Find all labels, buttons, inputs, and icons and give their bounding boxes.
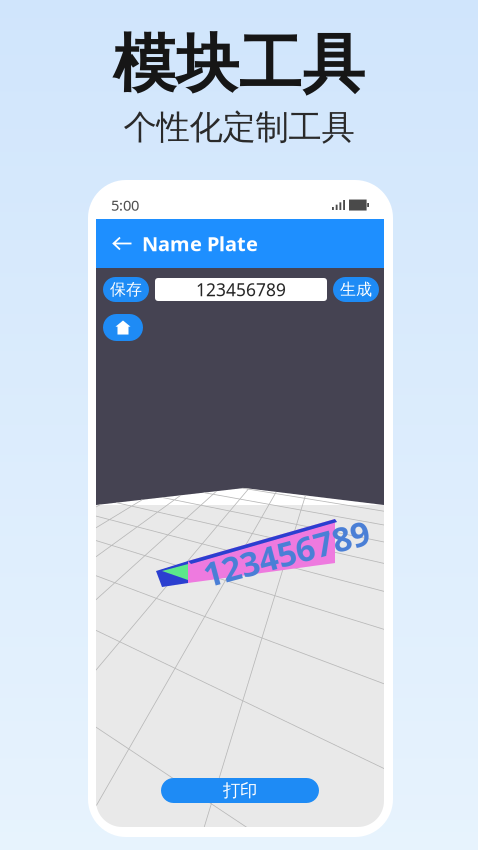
button[interactable]: Home [103,314,143,341]
button[interactable]: 打印 [161,778,319,803]
button[interactable]: Back [102,219,142,268]
staticText: 模块工具 [113,26,365,103]
staticText: 生成 [340,280,372,299]
staticText: Name Plate [142,230,258,257]
staticText: 5:00 [111,195,139,215]
staticText: 123456789 [201,531,372,575]
staticText: 123456789 [196,278,286,301]
staticText: 个性化定制工具 [123,107,354,148]
button[interactable]: 保存 [103,277,149,302]
staticText: 打印 [223,780,257,801]
button[interactable]: 生成 [333,277,379,302]
staticText: 保存 [110,280,142,299]
